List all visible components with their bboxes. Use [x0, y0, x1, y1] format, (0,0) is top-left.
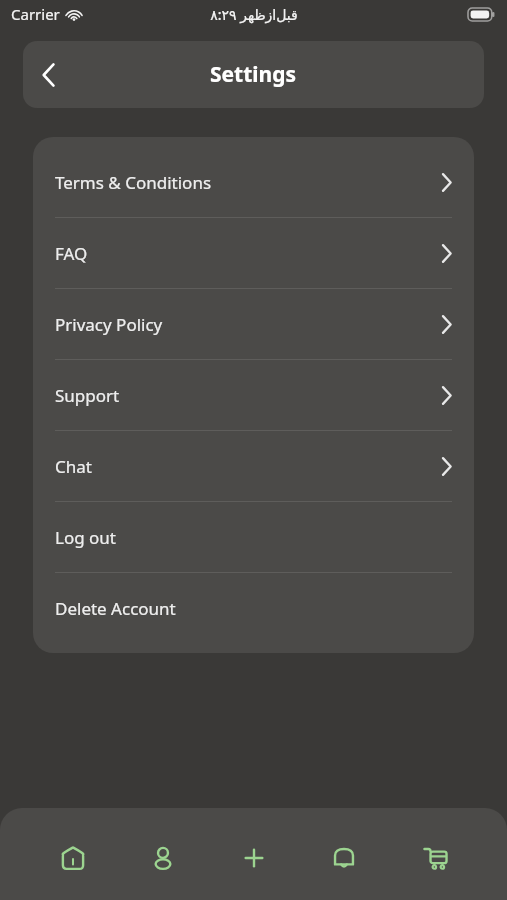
staticText: FAQ	[55, 242, 441, 265]
button[interactable]: FAQ	[33, 218, 474, 288]
staticText: Log out	[55, 526, 452, 549]
staticText: Chat	[55, 455, 441, 478]
button[interactable]: Delete Account	[33, 573, 474, 643]
button[interactable]: Profile	[135, 830, 191, 886]
staticText: Settings	[210, 60, 297, 89]
staticText: Privacy Policy	[55, 313, 441, 336]
button[interactable]: Chat	[33, 431, 474, 501]
button[interactable]: Add	[226, 830, 282, 886]
button[interactable]: Back	[23, 49, 75, 101]
button[interactable]: Cart	[407, 830, 463, 886]
button[interactable]: Privacy Policy	[33, 289, 474, 359]
staticText: Carrier	[11, 4, 60, 24]
staticText: ۸:۲۹ قبل‌ازظهر	[210, 5, 298, 24]
button[interactable]: Home	[45, 830, 101, 886]
button[interactable]: Support	[33, 360, 474, 430]
staticText: Terms & Conditions	[55, 171, 441, 194]
staticText: Delete Account	[55, 597, 452, 620]
staticText: Support	[55, 384, 441, 407]
button[interactable]: Log out	[33, 502, 474, 572]
button[interactable]: Notifications	[316, 830, 372, 886]
button[interactable]: Terms & Conditions	[33, 147, 474, 217]
